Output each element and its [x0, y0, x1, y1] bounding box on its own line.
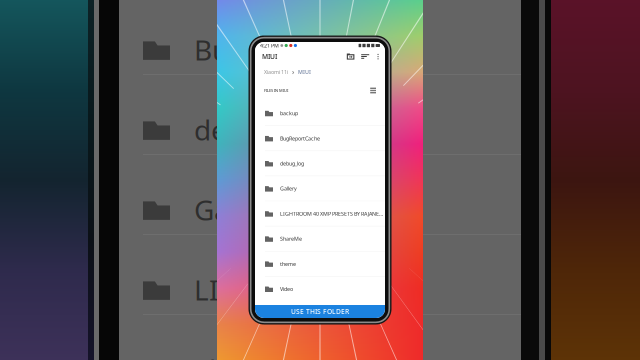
- button[interactable]: USE THIS FOLDER: [255, 305, 385, 318]
- button[interactable]: theme: [255, 252, 385, 276]
- button[interactable]: debug_log: [255, 151, 385, 176]
- staticText: deb: [194, 111, 244, 148]
- staticText: 4:21 PM: [260, 42, 279, 49]
- staticText: MIUI: [262, 52, 277, 61]
- staticText: Gallery: [280, 185, 297, 192]
- button[interactable]: More options: [373, 49, 383, 64]
- button[interactable]: New folder: [343, 49, 358, 64]
- staticText: BugReportCache: [280, 135, 320, 142]
- button[interactable]: BugReportCache: [255, 126, 385, 151]
- button[interactable]: LIGHTROOM 40 XMP PRESETS BY RAJANEDI...: [255, 201, 385, 226]
- button[interactable]: Xiaomi 11i: [264, 68, 288, 76]
- staticText: USE THIS FOLDER: [291, 307, 349, 316]
- staticText: Bug: [194, 31, 246, 68]
- staticText: MIUI: [298, 68, 311, 76]
- staticText: theme: [280, 260, 296, 267]
- staticText: Xiaomi 11i: [264, 68, 288, 76]
- button[interactable]: ShareMe: [255, 226, 385, 251]
- staticText: Video: [280, 285, 293, 292]
- staticText: Sha: [194, 351, 242, 360]
- staticText: debug_log: [280, 160, 304, 167]
- staticText: Gall: [194, 191, 244, 228]
- staticText: backup: [280, 110, 298, 117]
- staticText: ShareMe: [280, 235, 302, 242]
- button[interactable]: backup: [255, 101, 385, 125]
- staticText: LIG: [194, 271, 238, 308]
- button[interactable]: Sort: [358, 49, 373, 64]
- button[interactable]: MIUI: [298, 68, 311, 76]
- button[interactable]: Video: [255, 277, 385, 301]
- button[interactable]: Toggle view: [370, 88, 376, 93]
- staticText: FILES IN MIUI: [264, 88, 288, 93]
- button[interactable]: Gallery: [255, 176, 385, 201]
- staticText: ›: [292, 68, 294, 76]
- staticText: LIGHTROOM 40 XMP PRESETS BY RAJANEDI...: [280, 210, 385, 217]
